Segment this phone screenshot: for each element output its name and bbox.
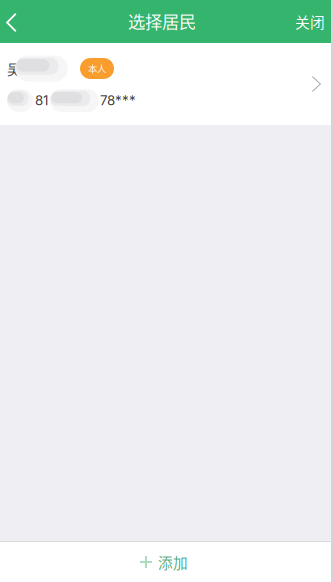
staticText: 吴 (7, 58, 21, 79)
button[interactable]: 返回 (0, 0, 44, 43)
button[interactable]: 关闭 (281, 0, 333, 43)
staticText: 81 (35, 92, 48, 108)
staticText: 本人 (88, 62, 106, 75)
staticText: 添加 (158, 551, 188, 573)
button[interactable]: 添加 (0, 542, 333, 582)
staticText: 78*** (100, 92, 136, 108)
staticText: 关闭 (295, 11, 325, 32)
button[interactable]: 吴 (0, 43, 333, 125)
staticText: 选择居民 (128, 8, 196, 34)
